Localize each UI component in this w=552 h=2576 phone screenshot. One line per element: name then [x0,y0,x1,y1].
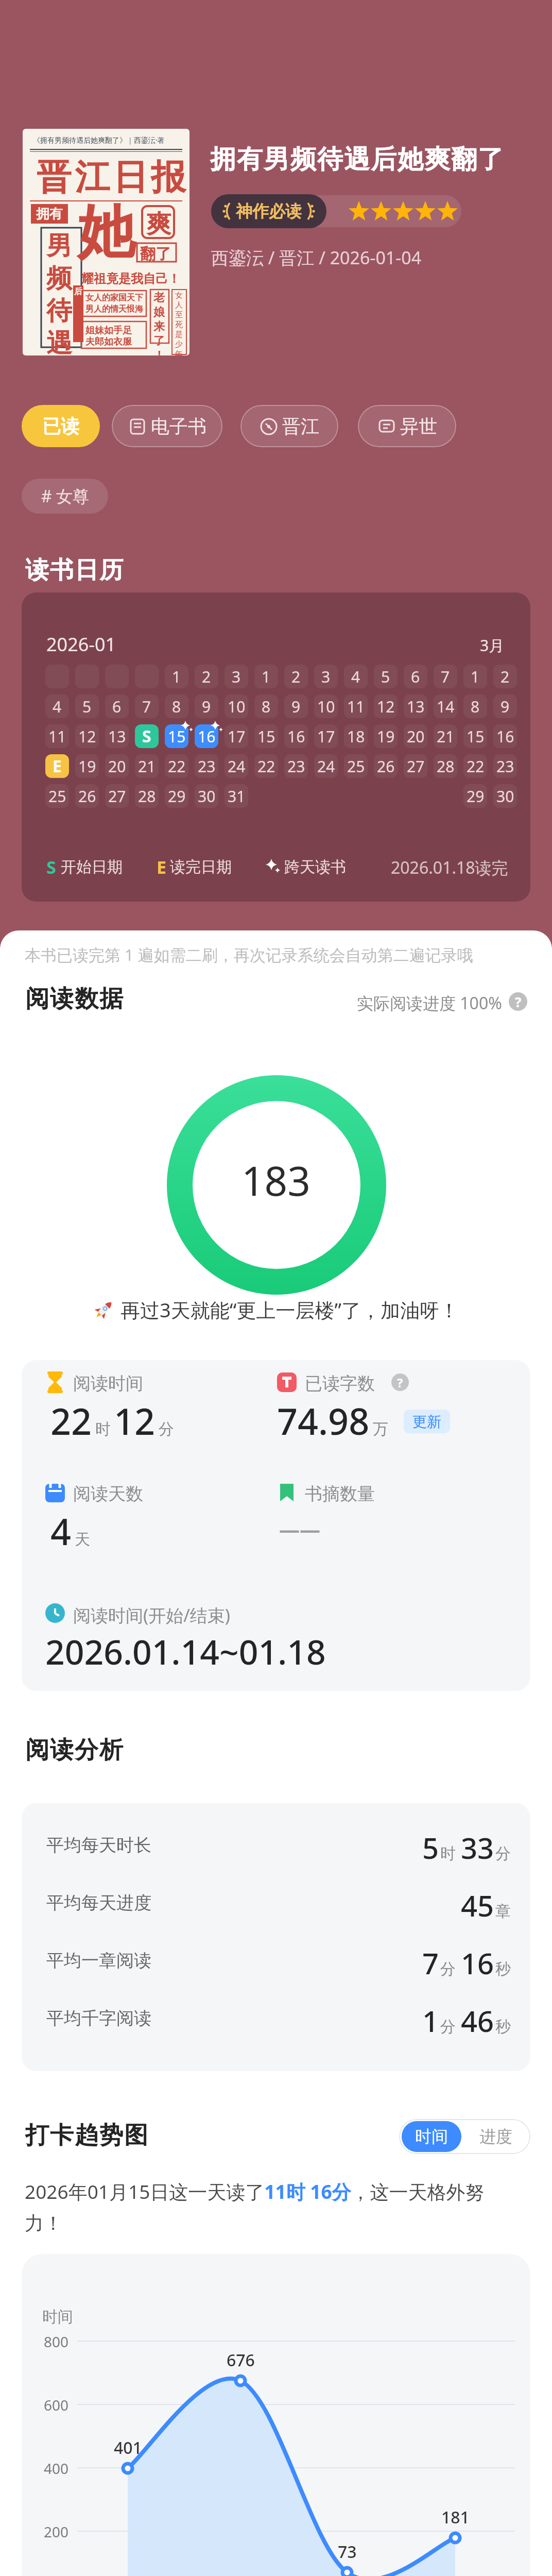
staticText: 8 [262,696,271,717]
staticText: 7 [441,666,450,687]
staticText: 读完日期 [170,857,232,877]
staticText: 181 [441,2506,470,2529]
staticText: S [142,725,151,748]
staticText: 遇 [46,327,72,355]
staticText: 19 [377,726,395,747]
staticText: 22 [168,756,186,777]
staticText: 4 [351,666,360,687]
staticText: 西鎏沄 / 晋江 / 2026-01-04 [211,246,422,269]
staticText: 平均一章阅读 [46,1950,151,1972]
staticText: 6 [112,696,122,717]
staticText: 至 [175,310,183,320]
staticText: 年 [175,349,183,355]
staticText: 来 [153,319,165,334]
staticText: 阅读时间 [73,1372,143,1395]
staticText: 24 [317,756,335,777]
staticText: 22 [257,756,275,777]
staticText: 姐妹如手足 [85,325,132,336]
staticText: 1 [471,666,480,687]
staticText: 时间 [42,2307,73,2327]
staticText: 33 [461,1828,494,1867]
staticText: 74.98 [277,1396,370,1445]
staticText: 本书已读完第 1 遍如需二刷，再次记录系统会自动第二遍记录哦 [25,944,473,965]
staticText: 26 [377,756,395,777]
staticText: 9 [501,696,510,717]
staticText: 读书日历 [25,555,124,585]
staticText: 夫郎如衣服 [85,336,132,348]
staticText: 2026.01.14~01.18 [45,1628,326,1674]
button[interactable] [221,195,461,227]
button[interactable]: 已读 [22,405,100,447]
staticText: 跨天读书 [284,857,346,877]
staticText: 老 [153,291,165,305]
staticText: 8 [172,696,181,717]
staticText: 45 [461,1886,494,1925]
staticText: 2026.01.18读完 [391,856,508,879]
staticText: 29 [467,786,485,807]
staticText: 拥有男频待遇后她爽翻了 [210,143,504,176]
button[interactable]: 神作必读 [211,194,326,228]
staticText: 天 [75,1530,90,1549]
button[interactable]: 更新 [404,1410,450,1433]
button[interactable]: 时间 [402,2121,461,2152]
staticText: 200 [44,2522,69,2541]
staticText: 13 [407,696,425,717]
staticText: 4 [53,696,62,717]
staticText: ? [397,1374,403,1391]
staticText: 更新 [412,1413,441,1431]
staticText: 28 [138,786,156,807]
staticText: 拥有 [36,206,63,223]
staticText: 再过3天就能“更上一层楼”了，加油呀！ [120,1296,459,1323]
staticText: 5 [82,696,92,717]
staticText: 书摘数量 [305,1483,375,1505]
staticText: 分 [159,1419,174,1439]
staticText: 16 [198,726,216,747]
button[interactable]: ? [509,992,527,1011]
staticText: 7 [422,1943,439,1982]
staticText: 11 [48,726,66,747]
staticText: 频 [46,262,72,295]
staticText: 12 [78,726,96,747]
staticText: 16 [461,1943,494,1982]
staticText: 11 [347,696,365,717]
staticText: 待 [46,295,72,327]
staticText: 19 [78,756,96,777]
staticText: 分 [440,1959,456,1979]
staticText: 《拥有男频待遇后她爽翻了》｜西鎏沄·著 [33,135,165,145]
staticText: 阅读数据 [25,984,124,1014]
staticText: 73 [338,2540,357,2563]
button[interactable]: # 女尊 [22,479,108,514]
staticText: 分 [495,1844,511,1863]
staticText: 2 [501,666,510,687]
staticText: 章 [495,1902,511,1921]
staticText: 平均每天进度 [46,1892,151,1914]
staticText: 秒 [495,2017,511,2037]
staticText: 28 [437,756,455,777]
staticText: 23 [287,756,305,777]
staticText: 平均每天时长 [46,1834,151,1856]
button[interactable]: 异世 [358,405,456,447]
staticText: 爽 [146,209,171,240]
staticText: 耀祖竟是我自己！ [81,271,180,286]
staticText: 平均千字阅读 [46,2007,151,2029]
staticText: 9 [291,696,301,717]
button[interactable]: 进度 [465,2121,527,2152]
staticText: 神作必读 [236,201,302,222]
staticText: 万 [373,1419,388,1439]
staticText: 女 [175,291,183,300]
staticText: 男 [46,230,72,262]
button[interactable]: 晋江 [240,405,338,447]
button[interactable]: 电子书 [112,405,222,447]
staticText: E [53,755,62,777]
staticText: 6 [411,666,420,687]
staticText: 22 [467,756,485,777]
staticText: # 女尊 [41,485,89,507]
staticText: S [46,855,56,879]
staticText: 31 [228,786,246,807]
staticText: 400 [44,2459,69,2478]
staticText: 13 [108,726,126,747]
staticText: 3 [321,666,331,687]
staticText: 阅读天数 [73,1483,143,1505]
staticText: 21 [138,756,156,777]
staticText: 实际阅读进度 100% [357,992,502,1014]
